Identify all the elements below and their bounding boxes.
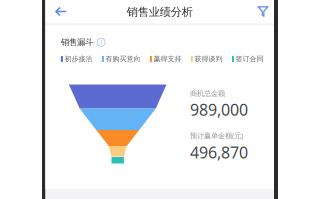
staticText: 获得谈判 xyxy=(194,54,222,63)
button[interactable]: Filter xyxy=(257,6,268,17)
staticText: 989,000 xyxy=(190,99,248,121)
button[interactable]: Back xyxy=(55,6,66,16)
staticText: 预计赢单金额(元) xyxy=(190,131,243,140)
staticText: 签订合同 xyxy=(235,54,263,63)
staticText: 销售漏斗 xyxy=(61,37,93,48)
staticText: 初步接洽 xyxy=(64,54,92,63)
staticText: 496,870 xyxy=(190,141,248,163)
staticText: i xyxy=(100,38,102,47)
staticText: 赢得支持 xyxy=(153,54,181,63)
staticText: 商机总金额 xyxy=(190,89,225,98)
staticText: 销售业绩分析 xyxy=(127,5,193,19)
staticText: 有购买意向 xyxy=(105,54,140,63)
